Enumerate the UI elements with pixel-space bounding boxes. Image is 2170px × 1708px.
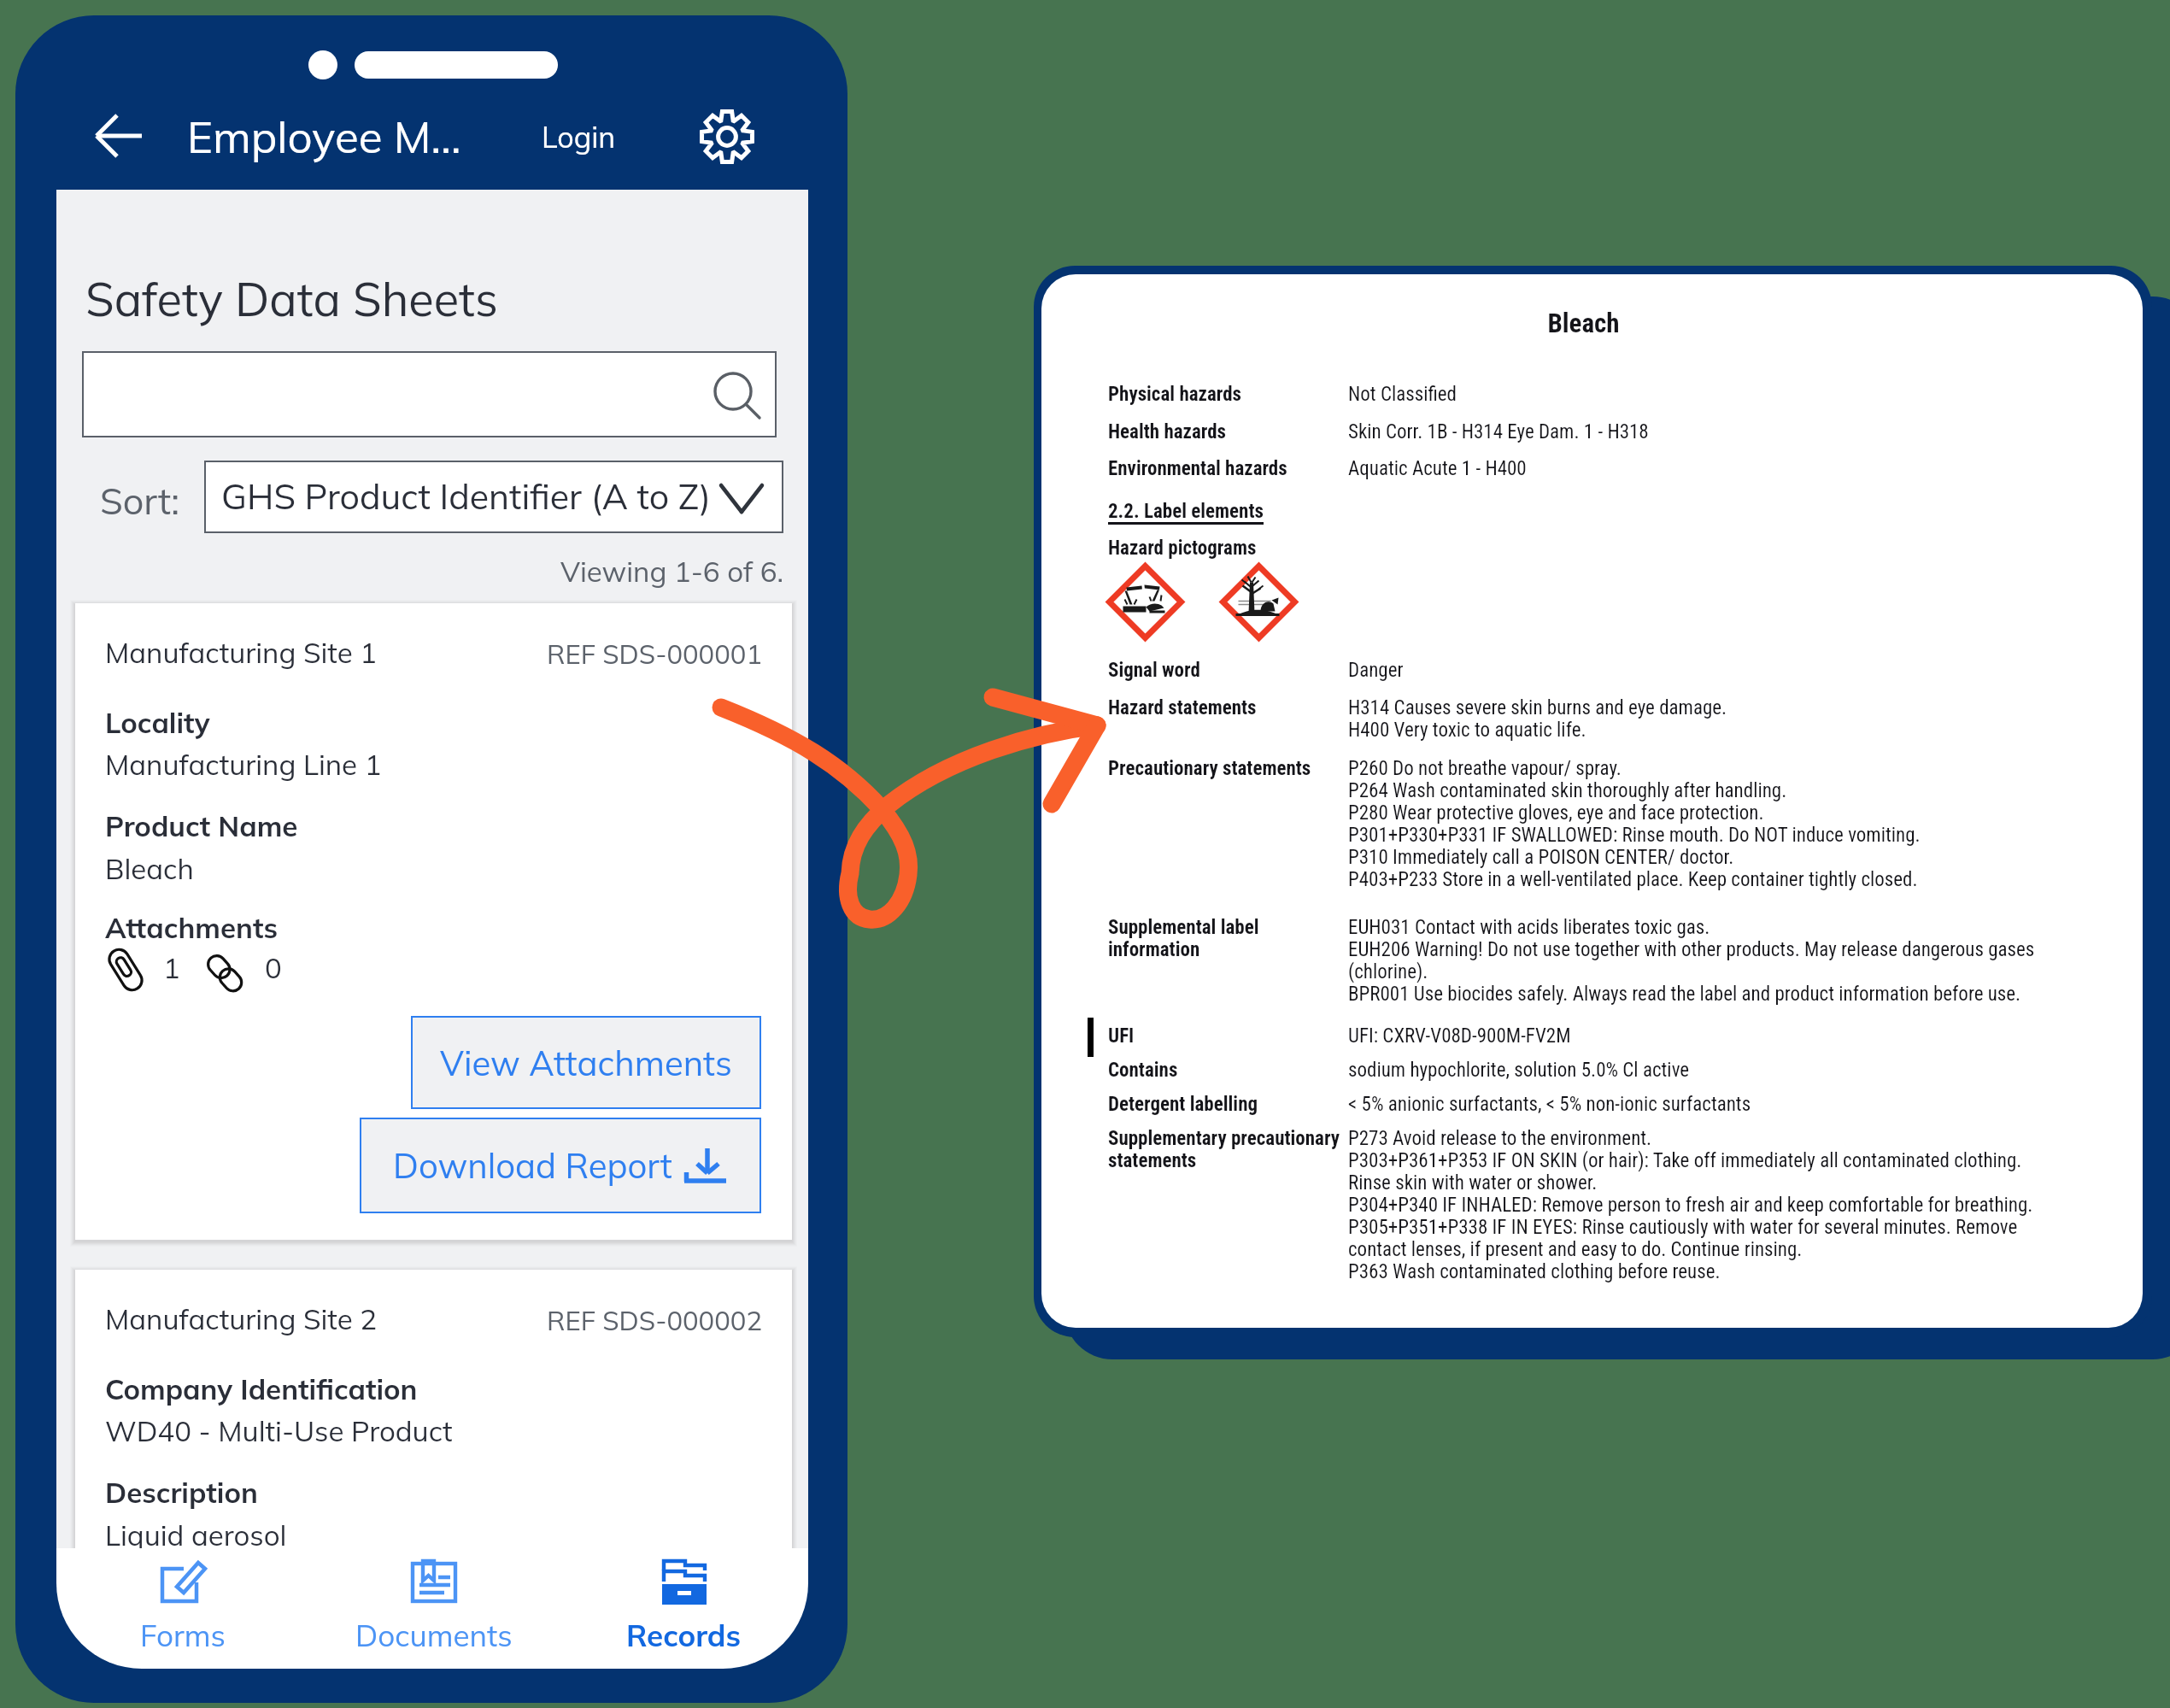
staticText: Contains bbox=[1108, 1059, 1178, 1082]
staticText: Download Report bbox=[393, 1144, 672, 1187]
staticText: WD40 - Multi-Use Product bbox=[105, 1413, 453, 1448]
button[interactable]: Documents bbox=[314, 1548, 554, 1663]
staticText: Supplementary precautionary bbox=[1108, 1127, 1340, 1150]
staticText: Liquid aerosol bbox=[105, 1517, 287, 1552]
button[interactable]: Login bbox=[542, 119, 616, 156]
staticText: Hazard statements bbox=[1108, 696, 1257, 719]
staticText: Attachments bbox=[105, 910, 279, 945]
staticText: sodium hypochlorite, solution 5.0% Cl ac… bbox=[1348, 1059, 1690, 1082]
staticText: P310 Immediately call a POISON CENTER/ d… bbox=[1348, 846, 1734, 869]
staticText: P304+P340 IF INHALED: Remove person to f… bbox=[1348, 1194, 2033, 1217]
button[interactable]: Records bbox=[563, 1548, 804, 1663]
staticText: Health hazards bbox=[1108, 420, 1227, 443]
staticText: Physical hazards bbox=[1108, 383, 1242, 406]
staticText: Environmental hazards bbox=[1108, 457, 1287, 480]
staticText: Description bbox=[105, 1475, 258, 1510]
staticText: (chlorine). bbox=[1348, 960, 1428, 983]
staticText: Hazard pictograms bbox=[1108, 537, 1257, 560]
staticText: P363 Wash contaminated clothing before r… bbox=[1348, 1260, 1721, 1283]
staticText: Signal word bbox=[1108, 659, 1200, 682]
staticText: Not Classified bbox=[1348, 383, 1457, 406]
staticText: information bbox=[1108, 938, 1200, 961]
staticText: 1 bbox=[163, 950, 180, 985]
staticText: REF SDS-000001 bbox=[75, 637, 762, 671]
button[interactable]: Manufacturing Site 2 bbox=[75, 1270, 792, 1549]
staticText: Company Identification bbox=[105, 1371, 418, 1406]
button[interactable]: Employee M… bbox=[187, 109, 461, 164]
staticText: Documents bbox=[355, 1617, 513, 1654]
staticText: Detergent labelling bbox=[1108, 1093, 1258, 1116]
staticText: EUH206 Warning! Do not use together with… bbox=[1348, 938, 2035, 961]
staticText: Locality bbox=[105, 705, 210, 740]
staticText: < 5% anionic surfactants, < 5% non-ionic… bbox=[1348, 1093, 1751, 1116]
button[interactable]: Forms bbox=[62, 1548, 303, 1663]
staticText: Login bbox=[542, 119, 616, 156]
staticText: UFI bbox=[1108, 1024, 1135, 1048]
staticText: GHS Product Identifier (A to Z) bbox=[221, 474, 712, 518]
staticText: Manufacturing Site 2 bbox=[105, 1301, 378, 1336]
staticText: P305+P351+P338 IF IN EYES: Rinse cautiou… bbox=[1348, 1216, 2018, 1239]
staticText: View Attachments bbox=[440, 1042, 732, 1084]
staticText: Precautionary statements bbox=[1108, 757, 1311, 780]
staticText: UFI: CXRV-V08D-900M-FV2M bbox=[1348, 1024, 1571, 1048]
staticText: P280 Wear protective gloves, eye and fac… bbox=[1348, 801, 1764, 825]
staticText: REF SDS-000002 bbox=[75, 1304, 762, 1337]
staticText: P273 Avoid release to the environment. bbox=[1348, 1127, 1652, 1150]
button[interactable]: Back bbox=[92, 109, 152, 162]
staticText: Sort: bbox=[100, 478, 179, 524]
button[interactable]: Manufacturing Site 1 bbox=[75, 603, 792, 1240]
button[interactable]: GHS Product Identifier (A to Z) bbox=[204, 461, 783, 533]
button[interactable]: Settings bbox=[700, 109, 754, 164]
staticText: Product Name bbox=[105, 808, 298, 843]
staticText: Skin Corr. 1B - H314 Eye Dam. 1 - H318 bbox=[1348, 420, 1649, 443]
staticText: Bleach bbox=[1041, 308, 2134, 338]
staticText: 2.2. Label elements bbox=[1108, 500, 1264, 523]
staticText: contact lenses, if present and easy to d… bbox=[1348, 1238, 1803, 1261]
staticText: Manufacturing Site 1 bbox=[105, 635, 378, 670]
staticText: Forms bbox=[140, 1617, 226, 1654]
staticText: Viewing 1-6 of 6. bbox=[82, 554, 783, 589]
staticText: BPR001 Use biocides safely. Always read … bbox=[1348, 983, 2021, 1006]
staticText: Danger bbox=[1348, 659, 1404, 682]
staticText: Rinse skin with water or shower. bbox=[1348, 1171, 1598, 1194]
staticText: Manufacturing Line 1 bbox=[105, 747, 382, 782]
staticText: Bleach bbox=[105, 851, 194, 886]
staticText: H400 Very toxic to aquatic life. bbox=[1348, 719, 1586, 742]
staticText: Supplemental label bbox=[1108, 916, 1259, 939]
staticText: Records bbox=[626, 1617, 742, 1654]
staticText: statements bbox=[1108, 1149, 1197, 1172]
staticText: Employee M… bbox=[187, 109, 461, 164]
staticText: P301+P330+P331 IF SWALLOWED: Rinse mouth… bbox=[1348, 824, 1921, 847]
staticText: P303+P361+P353 IF ON SKIN (or hair): Tak… bbox=[1348, 1149, 2022, 1172]
staticText: Safety Data Sheets bbox=[85, 270, 498, 328]
staticText: EUH031 Contact with acids liberates toxi… bbox=[1348, 916, 1710, 939]
staticText: H314 Causes severe skin burns and eye da… bbox=[1348, 696, 1727, 719]
button[interactable] bbox=[82, 351, 777, 437]
button[interactable]: View Attachments bbox=[411, 1016, 761, 1109]
button[interactable]: Download Report bbox=[360, 1118, 761, 1213]
staticText: 0 bbox=[265, 950, 282, 985]
staticText: P403+P233 Store in a well-ventilated pla… bbox=[1348, 868, 1918, 891]
staticText: P264 Wash contaminated skin thoroughly a… bbox=[1348, 779, 1787, 802]
staticText: P260 Do not breathe vapour/ spray. bbox=[1348, 757, 1622, 780]
staticText: Aquatic Acute 1 - H400 bbox=[1348, 457, 1527, 480]
